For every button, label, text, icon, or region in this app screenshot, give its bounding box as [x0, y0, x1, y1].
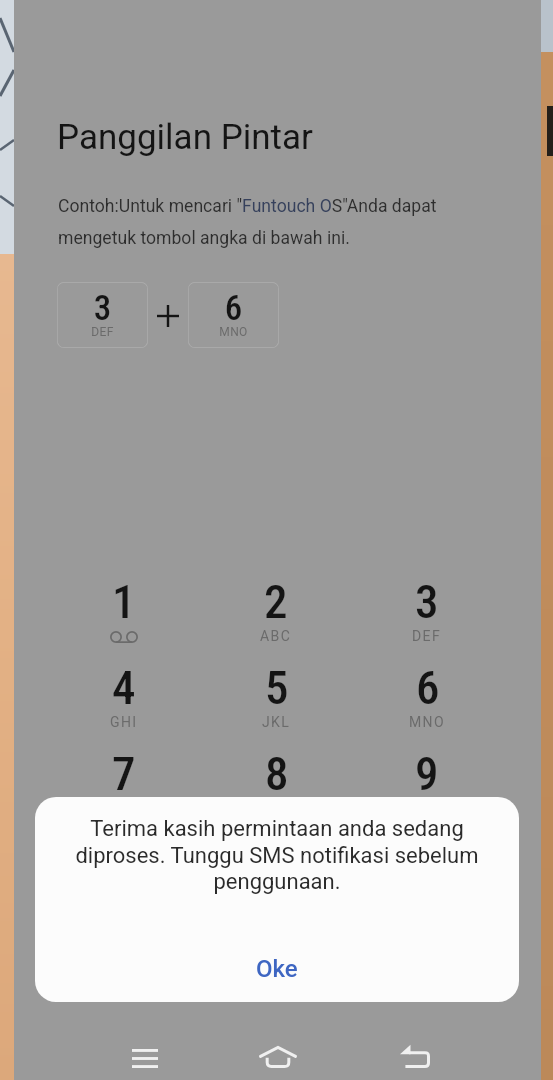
button[interactable]: Back: [386, 1027, 444, 1080]
staticText: DEF: [412, 628, 442, 644]
button[interactable]: 1: [76, 574, 172, 658]
staticText: 5: [265, 660, 289, 715]
staticText: 4: [112, 660, 136, 715]
staticText: 6: [416, 660, 440, 715]
staticText: ABC: [260, 628, 292, 644]
button[interactable]: 4: [76, 660, 172, 744]
button[interactable]: 2: [228, 574, 324, 658]
staticText: 3: [57, 288, 148, 329]
staticText: Panggilan Pintar: [57, 117, 313, 158]
staticText: 1: [112, 574, 136, 629]
button[interactable]: 8: [228, 746, 324, 830]
button[interactable]: plus: [140, 288, 196, 344]
staticText: JKL: [262, 714, 291, 730]
button[interactable]: 6: [188, 282, 279, 348]
staticText: 6: [188, 288, 279, 329]
button[interactable]: 7: [76, 746, 172, 830]
staticText: GHI: [110, 714, 138, 730]
button[interactable]: 3: [379, 574, 475, 658]
staticText: 2: [264, 574, 288, 629]
button[interactable]: Home: [249, 1028, 307, 1080]
staticText: Terima kasih permintaan anda sedang dipr…: [62, 816, 492, 894]
staticText: 3: [415, 574, 439, 629]
staticText: 9: [415, 746, 439, 801]
button[interactable]: 6: [379, 660, 475, 744]
staticText: DEF: [57, 325, 148, 339]
button[interactable]: Recent apps: [116, 1029, 174, 1080]
staticText: 8: [265, 746, 289, 801]
button[interactable]: 5: [228, 660, 324, 744]
button[interactable]: Oke: [35, 940, 519, 998]
staticText: MNO: [409, 714, 446, 730]
button[interactable]: 3: [57, 282, 148, 348]
staticText: MNO: [188, 325, 279, 339]
button[interactable]: 9: [379, 746, 475, 830]
staticText: Oke: [256, 955, 298, 983]
staticText: Contoh:Untuk mencari "Funtouch OS"Anda d…: [58, 196, 518, 248]
staticText: 7: [112, 746, 136, 801]
